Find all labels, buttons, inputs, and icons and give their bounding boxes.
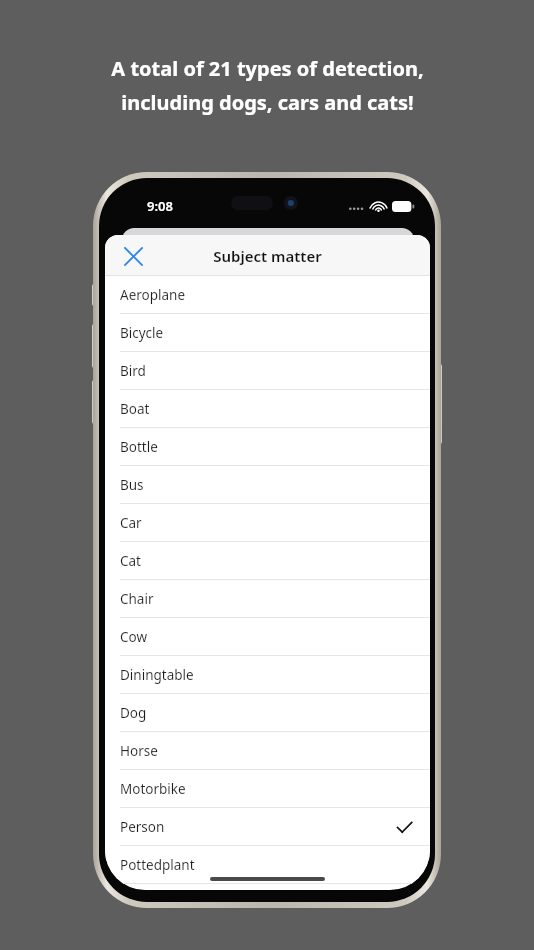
button[interactable]: Car [105, 504, 430, 542]
button[interactable]: Aeroplane [105, 276, 430, 314]
staticText: Car [120, 514, 142, 532]
button[interactable]: Cat [105, 542, 430, 580]
staticText: Dog [120, 704, 147, 722]
staticText: A total of 21 types of detection, [111, 55, 424, 82]
staticText: Person [120, 818, 165, 836]
button[interactable]: Bicycle [105, 314, 430, 352]
staticText: Chair [120, 590, 154, 608]
button[interactable]: Dog [105, 694, 430, 732]
button[interactable]: Horse [105, 732, 430, 770]
staticText: Bottle [120, 438, 158, 456]
button[interactable]: Chair [105, 580, 430, 618]
button[interactable]: Motorbike [105, 770, 430, 808]
staticText: Horse [120, 742, 158, 760]
staticText: Bicycle [120, 324, 164, 342]
button[interactable]: Person [105, 808, 430, 846]
staticText: Pottedplant [120, 856, 195, 874]
button[interactable]: Close [113, 236, 153, 276]
staticText: 9:08 [147, 197, 173, 215]
button[interactable]: Bus [105, 466, 430, 504]
staticText: Cow [120, 628, 148, 646]
button[interactable]: Diningtable [105, 656, 430, 694]
button[interactable]: Pottedplant [105, 846, 430, 884]
staticText: including dogs, cars and cats! [121, 89, 414, 116]
staticText: Boat [120, 400, 150, 418]
button[interactable]: Cow [105, 618, 430, 656]
staticText: Cat [120, 552, 141, 570]
staticText: Bird [120, 362, 146, 380]
button[interactable]: Bird [105, 352, 430, 390]
button[interactable]: Boat [105, 390, 430, 428]
button[interactable]: Bottle [105, 428, 430, 466]
staticText: Subject matter [213, 246, 322, 266]
staticText: Diningtable [120, 666, 194, 684]
staticText: Motorbike [120, 780, 186, 798]
staticText: Aeroplane [120, 286, 186, 304]
staticText: Bus [120, 476, 144, 494]
